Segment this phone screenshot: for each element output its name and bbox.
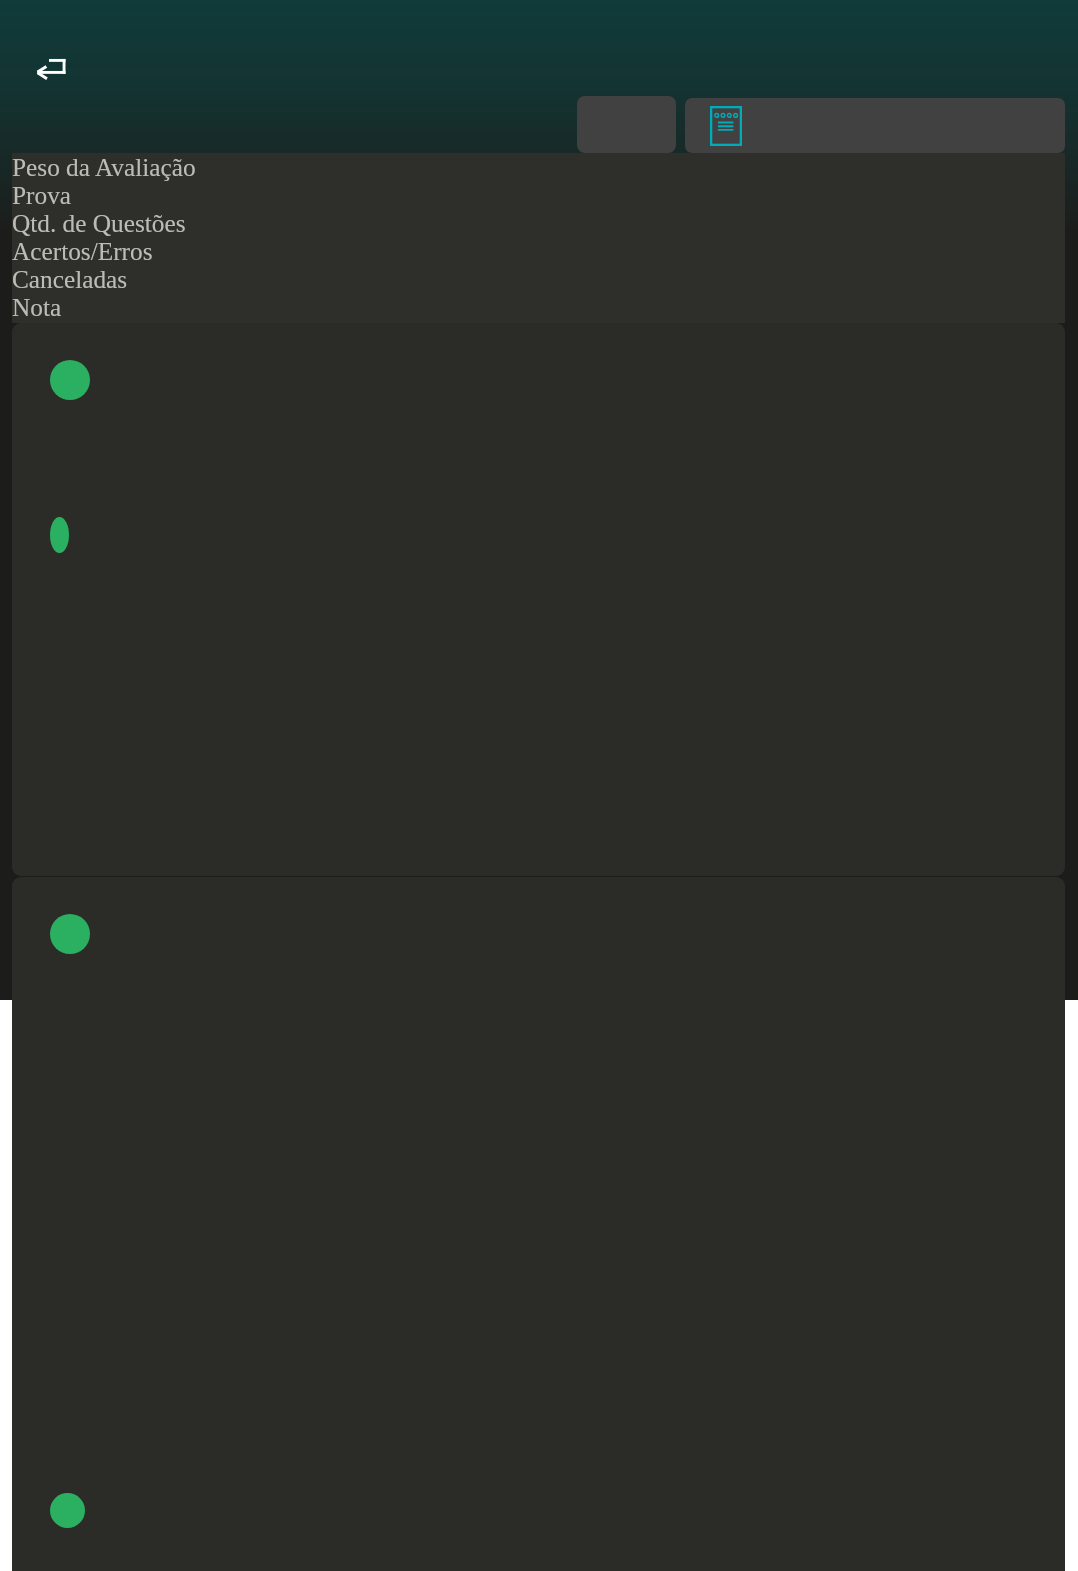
button[interactable]: Notes [685,98,1065,153]
staticText: Acertos/Erros [12,237,153,265]
staticText: Peso da Avaliação [12,153,196,181]
button[interactable]: Filter [577,96,676,153]
staticText: Nota [12,293,62,321]
staticText: Qtd. de Questões [12,209,186,237]
button[interactable]: Back [17,39,87,99]
button[interactable] [12,323,1065,876]
staticText: Canceladas [12,265,128,293]
staticText: Prova [12,181,72,209]
button[interactable] [12,877,1065,1571]
